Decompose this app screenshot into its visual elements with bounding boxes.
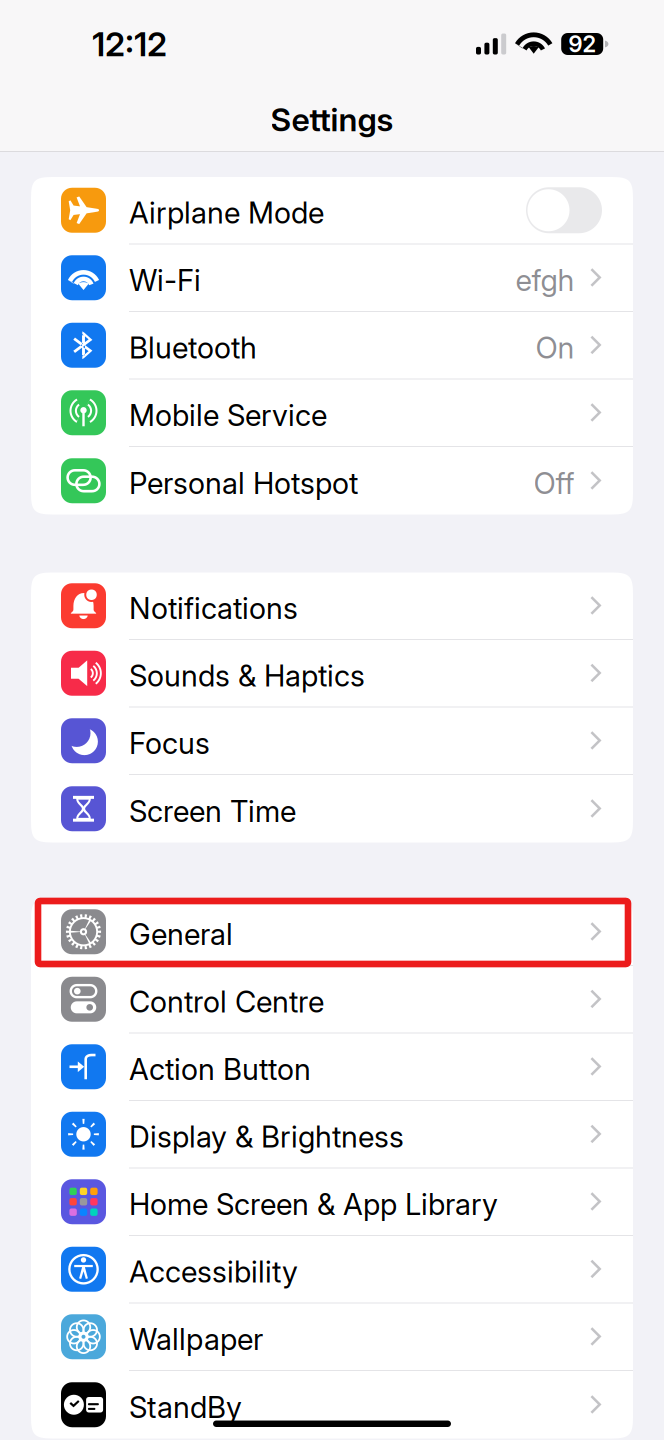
staticText: 12:12 (92, 24, 167, 64)
staticText: Wi-Fi (129, 263, 201, 297)
staticText: Mobile Service (129, 398, 327, 432)
staticText: General (129, 917, 233, 951)
button[interactable]: Airplane Mode (31, 177, 633, 244)
staticText: Control Centre (129, 984, 324, 1019)
staticText: StandBy (129, 1390, 242, 1424)
button[interactable]: Home Screen & App Library (31, 1168, 633, 1236)
staticText: Wallpaper (129, 1322, 263, 1356)
staticText: efgh (515, 263, 574, 297)
button[interactable]: Personal Hotspot (31, 447, 633, 514)
staticText: Home Screen & App Library (129, 1187, 498, 1221)
staticText: Personal Hotspot (129, 466, 358, 500)
staticText: Accessibility (129, 1254, 298, 1289)
button[interactable]: Accessibility (31, 1236, 633, 1303)
staticText: Action Button (129, 1052, 311, 1086)
staticText: Sounds & Haptics (129, 658, 365, 693)
staticText: Off (533, 466, 574, 500)
button[interactable]: StandBy (31, 1371, 633, 1438)
staticText: Screen Time (129, 794, 296, 828)
button[interactable]: General (31, 898, 633, 966)
staticText: Bluetooth (129, 330, 257, 365)
button[interactable]: Bluetooth (31, 312, 633, 379)
staticText: Airplane Mode (129, 195, 324, 230)
staticText: Notifications (129, 591, 298, 625)
button[interactable]: Control Centre (31, 966, 633, 1033)
button[interactable]: Screen Time (31, 775, 633, 842)
staticText: On (535, 330, 574, 365)
button[interactable]: Sounds & Haptics (31, 640, 633, 707)
button[interactable]: Wallpaper (31, 1303, 633, 1371)
button[interactable]: Mobile Service (31, 379, 633, 447)
staticText: Display & Brightness (129, 1119, 404, 1154)
button[interactable]: Display & Brightness (31, 1101, 633, 1168)
staticText: Settings (270, 101, 393, 138)
button[interactable]: Wi-Fi (31, 244, 633, 312)
button[interactable]: Focus (31, 707, 633, 775)
staticText: 92 (568, 31, 596, 57)
staticText: Focus (129, 726, 210, 760)
button[interactable]: Notifications (31, 572, 633, 640)
button[interactable]: Action Button (31, 1033, 633, 1101)
